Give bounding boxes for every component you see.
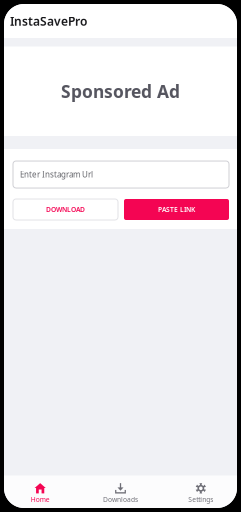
staticText: PASTE LINK <box>158 205 195 214</box>
button[interactable]: DOWNLOAD <box>13 199 118 220</box>
staticText: DOWNLOAD <box>46 205 85 214</box>
button[interactable]: Downloads <box>80 475 161 509</box>
staticText: Enter Instagram Url <box>20 169 93 180</box>
staticText: Sponsored Ad <box>61 80 180 103</box>
staticText: InstaSavePro <box>10 13 87 29</box>
button[interactable]: Home <box>0 475 80 509</box>
staticText: Downloads <box>103 495 138 504</box>
button[interactable]: PASTE LINK <box>124 199 229 220</box>
staticText: Settings <box>188 495 213 504</box>
button[interactable]: Settings <box>161 475 241 509</box>
staticText: Home <box>31 495 50 504</box>
